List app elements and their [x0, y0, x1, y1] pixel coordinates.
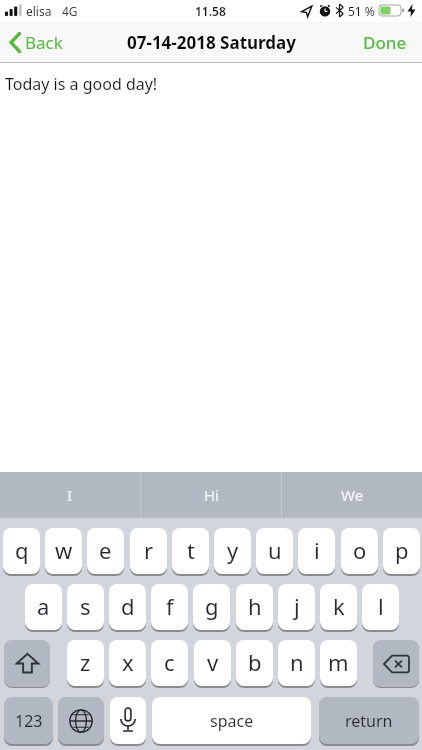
- staticText: d: [121, 591, 135, 621]
- staticText: y: [227, 535, 239, 565]
- button[interactable]: y: [214, 528, 251, 574]
- button[interactable]: We: [282, 472, 422, 518]
- staticText: l: [378, 591, 384, 621]
- staticText: Back: [25, 31, 63, 54]
- button[interactable]: [4, 640, 50, 687]
- staticText: Today is a good day!: [5, 73, 158, 95]
- button[interactable]: e: [87, 528, 124, 574]
- button[interactable]: b: [236, 640, 273, 686]
- button[interactable]: c: [151, 640, 188, 686]
- staticText: 4G: [62, 3, 78, 19]
- button[interactable]: r: [130, 528, 167, 574]
- staticText: elisa: [26, 3, 52, 19]
- staticText: space: [210, 710, 254, 732]
- button[interactable]: t: [172, 528, 209, 574]
- staticText: w: [55, 535, 73, 565]
- button[interactable]: g: [193, 584, 230, 630]
- button[interactable]: space: [152, 697, 311, 744]
- button[interactable]: m: [320, 640, 357, 686]
- button[interactable]: [58, 697, 104, 744]
- staticText: Hi: [204, 485, 219, 505]
- staticText: h: [248, 591, 262, 621]
- staticText: v: [207, 647, 219, 677]
- staticText: z: [80, 647, 91, 677]
- staticText: 11.58: [195, 3, 226, 19]
- button[interactable]: f: [151, 584, 188, 630]
- staticText: x: [122, 647, 134, 677]
- staticText: 07-14-2018 Saturday: [127, 31, 296, 54]
- staticText: We: [341, 485, 364, 505]
- button[interactable]: o: [341, 528, 378, 574]
- staticText: t: [187, 535, 195, 565]
- button[interactable]: I: [0, 472, 140, 518]
- button[interactable]: return: [319, 697, 419, 744]
- staticText: u: [268, 535, 282, 565]
- staticText: r: [144, 535, 154, 565]
- staticText: m: [328, 647, 349, 677]
- staticText: e: [99, 535, 112, 565]
- button[interactable]: l: [362, 584, 399, 630]
- staticText: k: [333, 591, 345, 621]
- staticText: g: [205, 591, 219, 621]
- button[interactable]: s: [67, 584, 104, 630]
- button[interactable]: k: [320, 584, 357, 630]
- button[interactable]: u: [256, 528, 293, 574]
- staticText: o: [353, 535, 367, 565]
- button[interactable]: p: [383, 528, 420, 574]
- staticText: q: [15, 535, 29, 565]
- button[interactable]: Hi: [141, 472, 281, 518]
- staticText: p: [395, 535, 409, 565]
- staticText: Done: [363, 31, 407, 54]
- button[interactable]: w: [45, 528, 82, 574]
- button[interactable]: [110, 697, 146, 744]
- button[interactable]: Back: [9, 31, 63, 54]
- button[interactable]: n: [278, 640, 315, 686]
- staticText: I: [67, 485, 73, 505]
- button[interactable]: d: [109, 584, 146, 630]
- staticText: s: [80, 591, 91, 621]
- button[interactable]: j: [278, 584, 315, 630]
- button[interactable]: z: [67, 640, 104, 686]
- button[interactable]: [373, 640, 419, 687]
- button[interactable]: i: [298, 528, 335, 574]
- staticText: b: [248, 647, 262, 677]
- staticText: j: [294, 591, 300, 621]
- button[interactable]: h: [236, 584, 273, 630]
- button[interactable]: 123: [4, 697, 53, 744]
- staticText: f: [166, 591, 174, 621]
- staticText: c: [164, 647, 175, 677]
- staticText: a: [37, 591, 50, 621]
- button[interactable]: a: [25, 584, 62, 630]
- button[interactable]: Done: [363, 31, 407, 54]
- button[interactable]: v: [194, 640, 231, 686]
- staticText: 123: [15, 710, 43, 732]
- staticText: n: [290, 647, 304, 677]
- staticText: 51 %: [348, 3, 375, 19]
- button[interactable]: x: [109, 640, 146, 686]
- button[interactable]: q: [3, 528, 40, 574]
- staticText: i: [314, 535, 320, 565]
- staticText: return: [345, 710, 393, 732]
